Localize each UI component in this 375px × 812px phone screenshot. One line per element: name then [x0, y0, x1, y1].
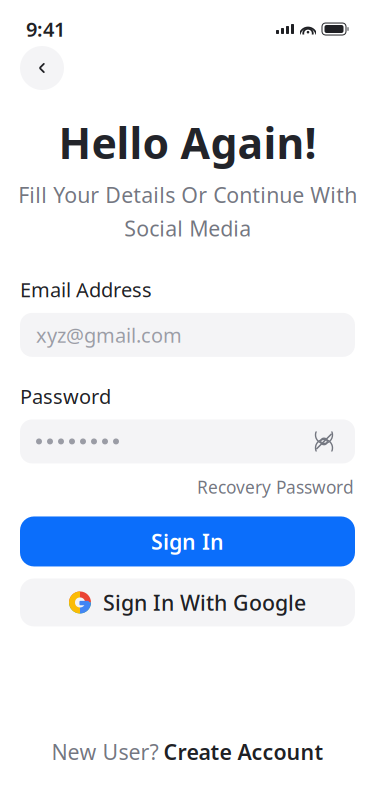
- staticText: xyz@gmail.com: [36, 322, 182, 348]
- button[interactable]: Sign In With Google: [20, 578, 355, 626]
- button[interactable]: Back: [20, 46, 64, 90]
- staticText: Create Account: [163, 738, 323, 766]
- button[interactable]: Show password: [309, 426, 339, 456]
- staticText: Recovery Password: [197, 475, 354, 498]
- staticText: Sign In With Google: [103, 588, 306, 617]
- button[interactable]: New User?: [0, 738, 375, 766]
- staticText: Email Address: [20, 276, 152, 303]
- staticText: Sign In: [151, 527, 224, 556]
- button[interactable]: Sign In: [20, 516, 355, 566]
- staticText: Password: [20, 383, 111, 409]
- staticText: Fill Your Details Or Continue With Socia…: [18, 181, 357, 242]
- staticText: Hello Again!: [58, 114, 316, 171]
- staticText: 9:41: [26, 16, 65, 42]
- button[interactable]: Recovery Password: [197, 475, 354, 498]
- staticText: New User?: [51, 738, 158, 766]
